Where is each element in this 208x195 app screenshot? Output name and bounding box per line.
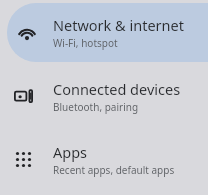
staticText: Recent apps, default apps — [53, 163, 175, 177]
staticText: Apps — [53, 142, 88, 162]
button[interactable]: Apps — [0, 128, 208, 191]
staticText: Bluetooth, pairing — [53, 100, 139, 114]
other: Connected devices — [14, 87, 33, 106]
staticText: Network & internet — [53, 15, 184, 35]
other: Apps — [16, 152, 31, 167]
other: Network and internet — [17, 23, 37, 43]
button[interactable]: Network and internet — [7, 3, 208, 62]
staticText: Wi-Fi, hotspot — [53, 36, 118, 50]
staticText: Connected devices — [53, 79, 181, 99]
button[interactable]: Connected devices — [0, 65, 208, 128]
